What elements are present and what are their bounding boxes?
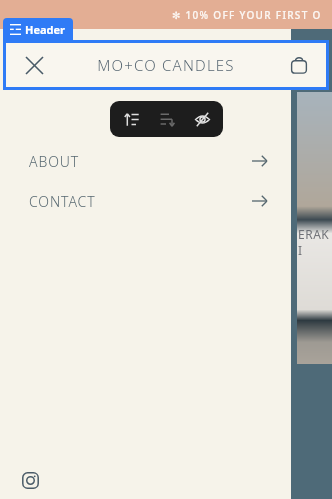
staticText: MO+CO CANDLES [97,55,235,75]
staticText: Header [25,22,66,37]
staticText: ERAKI [298,226,332,258]
button[interactable]: Close menu [15,46,53,84]
button[interactable]: CONTACT [0,184,291,218]
button[interactable]: Move down [152,104,182,134]
button[interactable]: Move up [116,104,146,134]
staticText: CONTACT [29,192,96,211]
button[interactable]: Cart [280,46,318,84]
staticText: ✻ 10% OFF YOUR FIRST O [172,8,322,22]
button[interactable]: MO+CO CANDLES [97,55,235,75]
button[interactable]: Instagram [14,464,46,496]
button[interactable]: Hide section [187,104,217,134]
staticText: ABOUT [29,152,80,171]
button[interactable]: Header [3,18,73,40]
button[interactable]: ABOUT [0,144,291,178]
